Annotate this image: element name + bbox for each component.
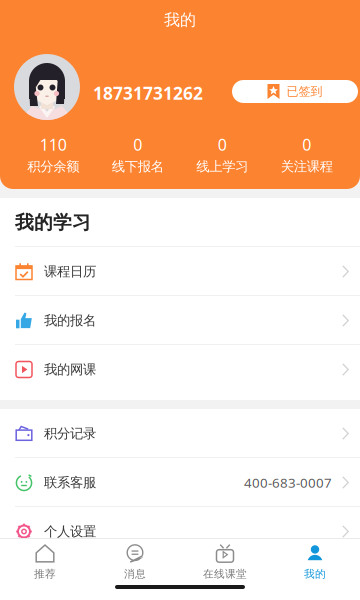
button[interactable]: 我的报名 [0,296,360,345]
staticText: 在线课堂 [203,567,247,580]
button[interactable]: 推荐 [0,538,90,585]
staticText: 线下报名 [112,158,164,175]
staticText: 个人设置 [44,523,96,540]
button[interactable]: 0 [264,134,349,175]
button[interactable]: 个人设置 [0,507,360,556]
staticText: 我的报名 [44,312,96,329]
staticText: 0 [218,134,227,155]
staticText: 联系客服 [44,474,96,491]
staticText: 我的 [164,10,196,30]
staticText: 18731731262 [93,81,203,104]
button[interactable]: 我的网课 [0,345,360,394]
staticText: 积分余额 [27,158,79,175]
button[interactable]: 0 [95,134,180,175]
staticText: 0 [302,134,311,155]
staticText: 400-683-0007 [244,474,332,491]
staticText: 我的 [304,567,326,580]
staticText: 消息 [124,567,146,580]
staticText: 我的网课 [44,361,96,378]
staticText: 积分记录 [44,425,96,442]
button[interactable]: 0 [180,134,264,175]
staticText: 推荐 [34,567,56,580]
staticText: 线上学习 [196,158,248,175]
button[interactable]: 我的 [270,538,360,585]
button[interactable]: 消息 [90,538,180,585]
button[interactable]: 课程日历 [0,247,360,296]
staticText: 已签到 [286,84,322,99]
staticText: 0 [133,134,142,155]
staticText: 我的学习 [15,211,91,234]
staticText: 110 [40,134,67,155]
button[interactable]: 在线课堂 [180,538,270,585]
staticText: 关注课程 [281,158,333,175]
button[interactable]: 已签到 [232,80,358,103]
button[interactable]: 110 [11,134,95,175]
button[interactable]: 积分记录 [0,409,360,458]
staticText: 课程日历 [44,263,96,280]
button[interactable]: 联系客服 [0,458,360,507]
